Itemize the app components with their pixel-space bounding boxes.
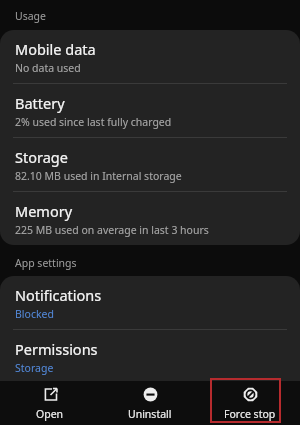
- staticText: No data used: [15, 61, 81, 75]
- button[interactable]: Mobile data: [0, 30, 300, 83]
- staticText: Storage: [15, 147, 68, 167]
- button[interactable]: Open: [0, 381, 100, 425]
- staticText: Usage: [15, 9, 46, 23]
- staticText: Uninstall: [128, 407, 172, 421]
- staticText: Storage: [15, 361, 54, 375]
- staticText: Memory: [15, 201, 73, 221]
- button[interactable]: Force stop: [200, 381, 300, 425]
- staticText: Mobile data: [15, 39, 96, 59]
- staticText: Permissions: [15, 339, 98, 359]
- staticText: Open: [36, 407, 64, 421]
- staticText: Blocked: [15, 307, 54, 321]
- staticText: Battery: [15, 93, 65, 113]
- staticText: 2% used since last fully charged: [15, 115, 172, 129]
- staticText: 82.10 MB used in Internal storage: [15, 169, 182, 183]
- button[interactable]: Memory: [0, 192, 300, 245]
- button[interactable]: Notifications: [0, 276, 300, 329]
- staticText: App settings: [15, 256, 77, 270]
- staticText: 225 MB used on average in last 3 hours: [15, 223, 209, 237]
- staticText: Force stop: [224, 407, 276, 421]
- button[interactable]: Battery: [0, 84, 300, 137]
- button[interactable]: Permissions: [0, 330, 300, 383]
- button[interactable]: Storage: [0, 138, 300, 191]
- button[interactable]: Uninstall: [100, 381, 200, 425]
- staticText: Notifications: [15, 285, 102, 305]
